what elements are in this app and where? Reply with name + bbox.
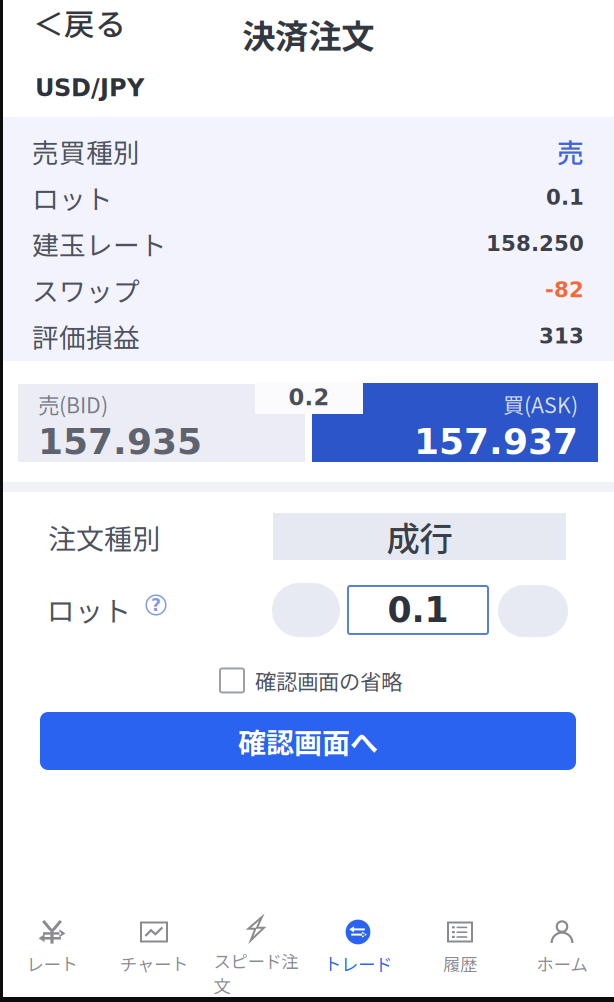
button[interactable]: Increase lot	[498, 585, 568, 637]
staticText: 157.935	[38, 420, 202, 462]
button[interactable]: Decrease lot	[272, 583, 340, 637]
button[interactable]: 買(ASK)	[312, 383, 598, 462]
staticText: トレード	[324, 951, 392, 976]
staticText: ＜戻る	[33, 0, 126, 44]
staticText: 0.1	[387, 590, 448, 630]
button[interactable]: 確認画面へ	[40, 712, 576, 770]
staticText: スピード注文	[213, 948, 298, 998]
staticText: ?	[151, 595, 161, 615]
staticText: 売(BID)	[38, 389, 108, 419]
staticText: 0.1	[546, 185, 584, 210]
staticText: チャート	[120, 951, 188, 976]
staticText: 確認画面の省略	[255, 665, 402, 696]
button[interactable]: レート	[1, 915, 103, 995]
staticText: 0.2	[288, 384, 329, 411]
staticText: ロット	[32, 178, 113, 217]
button[interactable]: 売(BID)	[18, 384, 305, 462]
staticText: 確認画面へ	[238, 721, 378, 761]
button[interactable]: 成行	[273, 513, 566, 560]
staticText: 決済注文	[242, 10, 374, 58]
staticText: 158.250	[486, 231, 584, 256]
staticText: USD/JPY	[35, 74, 144, 102]
staticText: 売買種別	[32, 132, 140, 170]
staticText: 履歴	[443, 951, 477, 976]
staticText: 買(ASK)	[503, 389, 578, 419]
staticText: レート	[26, 951, 77, 976]
staticText: 売	[557, 132, 584, 170]
button[interactable]: スピード注文	[205, 915, 307, 995]
staticText: 成行	[386, 512, 452, 561]
button[interactable]: トレード	[307, 915, 409, 995]
staticText: -82	[545, 277, 584, 302]
staticText: ホーム	[536, 951, 587, 976]
button[interactable]: 履歴	[409, 915, 511, 995]
button[interactable]: 確認画面の省略	[220, 662, 402, 699]
staticText: ロット	[47, 589, 131, 629]
staticText: 157.937	[414, 420, 578, 462]
button[interactable]: 0.1	[348, 586, 488, 634]
button[interactable]: ＜戻る	[33, 0, 138, 62]
staticText: 評価損益	[32, 317, 140, 355]
staticText: スワップ	[32, 271, 140, 309]
staticText: 建玉レート	[32, 224, 167, 263]
button[interactable]: チャート	[103, 915, 205, 995]
staticText: 313	[539, 324, 584, 348]
button[interactable]: ホーム	[511, 915, 613, 995]
staticText: 注文種別	[48, 517, 160, 557]
